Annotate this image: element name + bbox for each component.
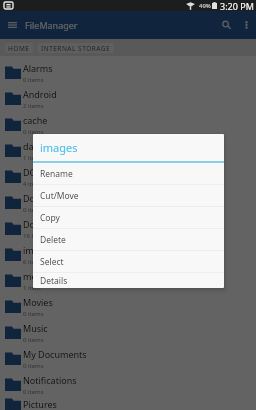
staticText: HOME [8, 44, 30, 53]
button[interactable]: Music [0, 318, 256, 344]
staticText: 0 items [23, 336, 44, 344]
staticText: 2 items [23, 102, 44, 110]
staticText: 16 items [23, 232, 48, 240]
button[interactable]: data [0, 136, 256, 162]
staticText: DCIM [23, 166, 47, 178]
staticText: cache [23, 114, 48, 126]
staticText: Music [23, 322, 48, 334]
staticText: 6 items [23, 258, 44, 266]
staticText: images [23, 244, 54, 256]
staticText: 0 items [23, 206, 44, 214]
button[interactable]: Menu [0, 11, 24, 39]
button[interactable]: Download [0, 214, 256, 240]
button[interactable]: INTERNAL STORAGE [38, 43, 114, 53]
staticText: 3:20 PM [220, 0, 254, 11]
staticText: Download [23, 218, 66, 230]
staticText: Alarms [23, 62, 53, 74]
staticText: My Documents [23, 348, 87, 360]
staticText: media [23, 270, 50, 282]
staticText: INTERNAL STORAGE [41, 44, 111, 53]
staticText: Cut/Move [40, 190, 79, 202]
button[interactable]: media [0, 266, 256, 292]
staticText: 0 items [23, 76, 44, 84]
staticText: data [23, 140, 42, 152]
staticText: 4 items [23, 180, 44, 188]
button[interactable]: Alarms [0, 58, 256, 84]
button[interactable]: cache [0, 110, 256, 136]
button[interactable]: Movies [0, 292, 256, 318]
staticText: Documents [23, 192, 72, 204]
button[interactable]: Pictures [0, 396, 256, 410]
staticText: Movies [23, 296, 53, 308]
button[interactable]: Rename [33, 163, 224, 184]
button[interactable]: images [0, 240, 256, 266]
staticText: Delete [40, 234, 66, 246]
button[interactable]: Delete [33, 229, 224, 250]
button[interactable]: Search [217, 11, 236, 39]
staticText: Select [40, 256, 64, 268]
staticText: 0 items [23, 310, 44, 318]
button[interactable]: Cut/Move [33, 185, 224, 206]
button[interactable]: DCIM [0, 162, 256, 188]
button[interactable]: More options [236, 11, 256, 39]
staticText: Copy [40, 212, 60, 224]
staticText: Details [40, 275, 68, 287]
button[interactable]: Android [0, 84, 256, 110]
staticText: 0 items [23, 362, 44, 370]
staticText: 49% [199, 2, 211, 10]
button[interactable]: Notifications [0, 370, 256, 396]
staticText: Rename [40, 168, 73, 180]
staticText: images [40, 140, 78, 155]
staticText: Android [23, 88, 57, 100]
staticText: 0 items [23, 388, 44, 396]
staticText: Notifications [23, 374, 77, 386]
button[interactable]: Copy [33, 207, 224, 228]
button[interactable]: My Documents [0, 344, 256, 370]
staticText: Pictures [23, 398, 57, 410]
button[interactable]: Details [33, 273, 224, 288]
staticText: FileManager [25, 19, 78, 31]
staticText: 1 item [23, 154, 41, 162]
button[interactable]: Documents [0, 188, 256, 214]
button[interactable]: HOME [5, 43, 33, 53]
button[interactable]: Select [33, 251, 224, 272]
staticText: 1 item [23, 284, 41, 292]
staticText: 0 items [23, 128, 44, 136]
